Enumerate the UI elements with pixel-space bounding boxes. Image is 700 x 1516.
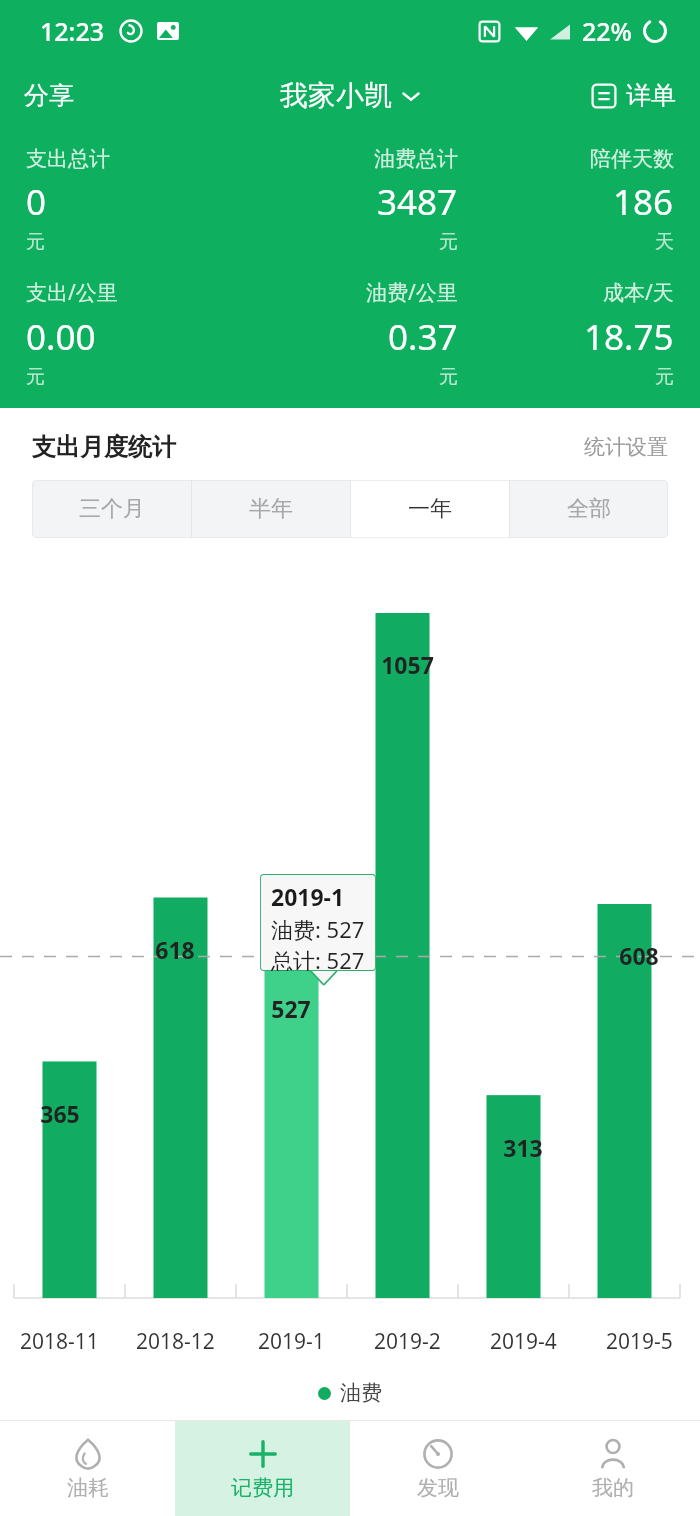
button[interactable]: 三个月: [32, 480, 191, 538]
staticText: 2018-11: [20, 1327, 99, 1356]
staticText: 2019-5: [606, 1327, 673, 1356]
staticText: 元: [26, 365, 45, 389]
staticText: 527: [271, 993, 311, 1024]
staticText: 支出总计: [26, 146, 110, 172]
button[interactable]: 统计设置: [584, 434, 668, 460]
button[interactable]: 我家小凯: [272, 70, 428, 121]
staticText: 618: [155, 934, 195, 965]
staticText: 半年: [249, 495, 293, 523]
button[interactable]: 我的: [525, 1421, 700, 1516]
staticText: 12:23: [40, 14, 105, 48]
staticText: 2019-1: [271, 881, 345, 912]
staticText: 186: [613, 178, 674, 226]
staticText: 油费/公里: [366, 278, 458, 307]
staticText: 详单: [626, 80, 676, 111]
staticText: 0: [26, 178, 47, 226]
button[interactable]: 全部: [510, 480, 668, 538]
staticText: 油费: 527: [271, 914, 365, 944]
staticText: 元: [655, 365, 674, 389]
staticText: 365: [40, 1098, 80, 1129]
staticText: 2019-4: [490, 1327, 557, 1356]
staticText: 2019-2: [374, 1327, 441, 1356]
staticText: 成本/天: [603, 278, 674, 307]
staticText: 1057: [381, 649, 434, 680]
staticText: 分享: [24, 80, 74, 111]
staticText: 2018-12: [136, 1327, 215, 1356]
staticText: 22%: [582, 14, 632, 48]
staticText: 总计: 527: [271, 945, 365, 971]
staticText: 发现: [417, 1475, 459, 1501]
staticText: 支出月度统计: [32, 432, 176, 462]
staticText: 18.75: [584, 313, 674, 361]
staticText: 我家小凯: [280, 78, 392, 113]
button[interactable]: 一年: [351, 480, 509, 538]
button[interactable]: 详单: [575, 72, 700, 119]
staticText: 元: [439, 230, 458, 254]
staticText: 统计设置: [584, 434, 668, 460]
button[interactable]: 分享: [0, 72, 90, 119]
button[interactable]: 油耗: [0, 1421, 175, 1516]
staticText: 三个月: [79, 495, 145, 523]
staticText: 3487: [377, 178, 458, 226]
staticText: 313: [503, 1132, 543, 1163]
button[interactable]: 半年: [192, 480, 350, 538]
staticText: 天: [655, 230, 674, 254]
staticText: 我的: [592, 1475, 634, 1501]
staticText: 油耗: [67, 1475, 109, 1501]
staticText: 2019-1: [258, 1327, 325, 1356]
staticText: 元: [439, 365, 458, 389]
staticText: 全部: [567, 495, 611, 523]
staticText: 一年: [408, 495, 452, 523]
staticText: 陪伴天数: [590, 146, 674, 172]
staticText: 油费: [340, 1380, 382, 1406]
staticText: 0.00: [26, 313, 96, 361]
button[interactable]: 发现: [350, 1421, 525, 1516]
staticText: 元: [26, 230, 45, 254]
staticText: 608: [619, 940, 659, 971]
staticText: 油费总计: [374, 146, 458, 172]
staticText: 支出/公里: [26, 278, 118, 307]
staticText: 0.37: [388, 313, 458, 361]
button[interactable]: 记费用: [175, 1421, 350, 1516]
staticText: 记费用: [231, 1475, 294, 1501]
